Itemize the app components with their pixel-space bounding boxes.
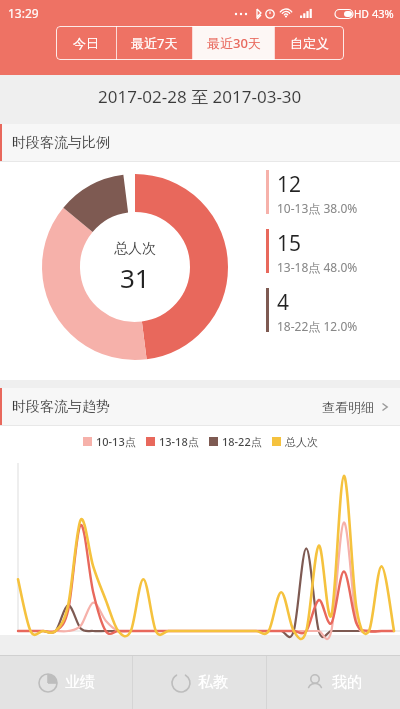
button[interactable]: 时段客流与趋势: [0, 388, 400, 425]
staticText: 13:29: [8, 5, 39, 21]
staticText: 18-22点 12.0%: [277, 318, 358, 334]
button[interactable]: 自定义: [275, 26, 344, 60]
staticText: 15: [277, 229, 302, 258]
staticText: 最近30天: [207, 34, 261, 52]
staticText: 总人次: [114, 240, 156, 258]
staticText: 我的: [332, 673, 362, 692]
other: 我的: [305, 673, 325, 693]
staticText: 18-22点: [222, 434, 262, 449]
staticText: 4: [277, 288, 290, 317]
staticText: 2017-02-28 至 2017-03-30: [98, 85, 302, 108]
button[interactable]: 最近30天: [193, 26, 274, 60]
staticText: HD: [354, 7, 369, 21]
staticText: 10-13点 38.0%: [277, 200, 358, 216]
button[interactable]: 私教: [133, 656, 266, 709]
staticText: 最近7天: [131, 34, 178, 52]
staticText: 43%: [372, 6, 394, 21]
staticText: 自定义: [290, 35, 329, 51]
staticText: 私教: [198, 673, 228, 692]
staticText: 业绩: [65, 673, 95, 692]
staticText: 时段客流与比例: [12, 134, 110, 152]
other: 业绩: [38, 673, 58, 693]
staticText: 总人次: [285, 435, 318, 449]
button[interactable]: 业绩: [0, 656, 132, 709]
staticText: 查看明细: [322, 399, 374, 415]
other: 私教: [171, 673, 191, 693]
staticText: 13-18点 48.0%: [277, 259, 358, 275]
staticText: 10-13点: [96, 434, 136, 449]
button[interactable]: 我的: [267, 656, 400, 709]
button[interactable]: 今日: [56, 26, 116, 60]
staticText: 时段客流与趋势: [12, 398, 110, 416]
staticText: 12: [277, 170, 302, 199]
staticText: 13-18点: [159, 434, 199, 449]
button[interactable]: 最近7天: [117, 26, 192, 60]
staticText: 31: [120, 260, 150, 295]
staticText: 今日: [73, 35, 99, 51]
